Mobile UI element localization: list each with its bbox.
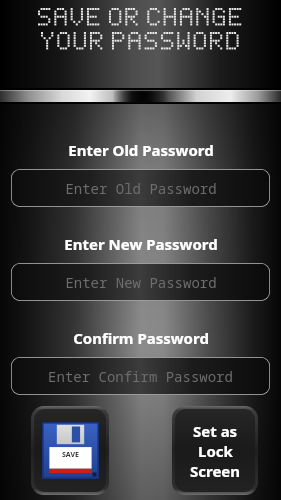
button[interactable]: Set as — [172, 406, 258, 495]
staticText: Screen — [190, 461, 241, 481]
button[interactable]: Save password — [31, 406, 109, 495]
staticText: Enter Old Password — [65, 179, 217, 198]
staticText: Enter Old Password — [68, 140, 214, 160]
staticText: Lock — [198, 441, 233, 461]
staticText: Set as — [193, 421, 238, 441]
staticText: SAVE — [62, 450, 79, 460]
staticText: Enter Confirm Password — [48, 367, 233, 386]
button[interactable]: Set as — [172, 406, 258, 495]
button[interactable]: SAVE — [31, 406, 109, 495]
button[interactable]: Enter Old Password — [11, 169, 270, 207]
button[interactable]: Enter Confirm Password — [11, 357, 270, 395]
staticText: Confirm Password — [73, 328, 209, 348]
button[interactable]: Enter New Password — [11, 263, 270, 301]
staticText: Enter New Password — [64, 234, 218, 254]
staticText: Enter New Password — [65, 273, 217, 292]
